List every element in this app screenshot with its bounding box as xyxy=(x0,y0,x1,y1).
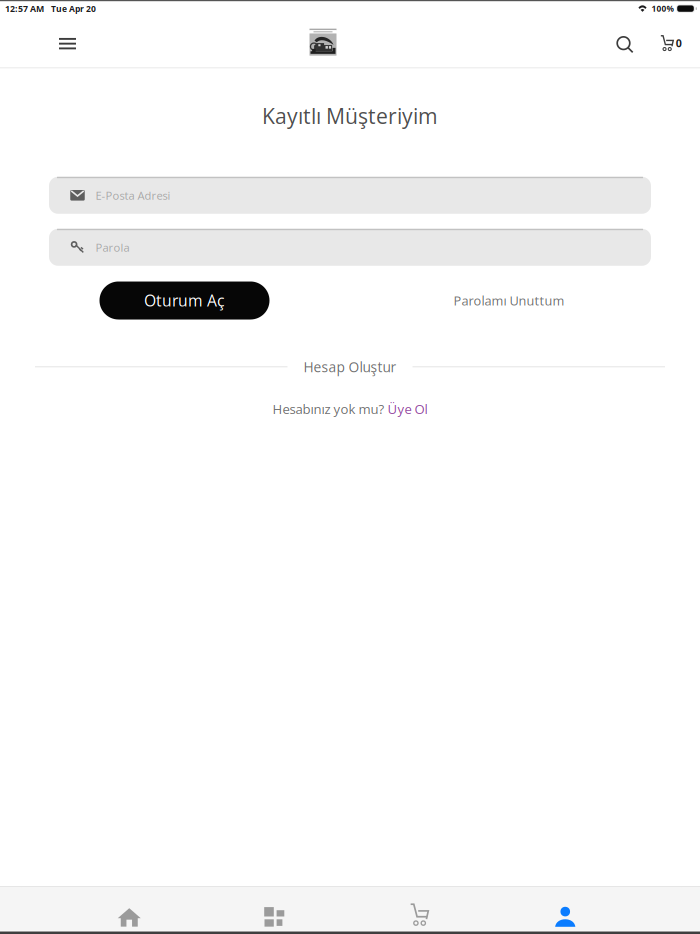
staticText: 100% xyxy=(652,3,674,14)
button[interactable]: Categories xyxy=(202,887,347,930)
button[interactable]: Home xyxy=(57,887,202,930)
staticText: Tue Apr 20 xyxy=(51,3,96,14)
staticText: Kayıtlı Müşteriyim xyxy=(262,101,438,130)
button[interactable]: Parolamı Unuttum xyxy=(453,281,565,319)
button[interactable]: Menu xyxy=(41,15,93,70)
staticText: E-Posta Adresi xyxy=(95,188,170,203)
staticText: Üye Ol xyxy=(387,400,427,418)
staticText: Parolamı Unuttum xyxy=(453,292,564,309)
staticText: 12:57 AM xyxy=(5,3,44,15)
button[interactable]: Oturum Aç xyxy=(99,281,269,319)
button[interactable]: Üye Ol xyxy=(387,400,427,418)
staticText: Parola xyxy=(95,240,129,255)
button[interactable]: Cart, 0 items xyxy=(649,15,693,69)
staticText: Oturum Aç xyxy=(144,290,225,311)
button[interactable]: Store home xyxy=(295,16,351,68)
staticText: 0 xyxy=(676,36,682,50)
button[interactable]: Search xyxy=(601,14,649,71)
button[interactable]: Cart xyxy=(347,887,493,930)
staticText: Hesap Oluştur xyxy=(303,357,396,376)
button[interactable]: Account xyxy=(493,887,638,930)
staticText: Hesabınız yok mu? xyxy=(272,400,387,418)
